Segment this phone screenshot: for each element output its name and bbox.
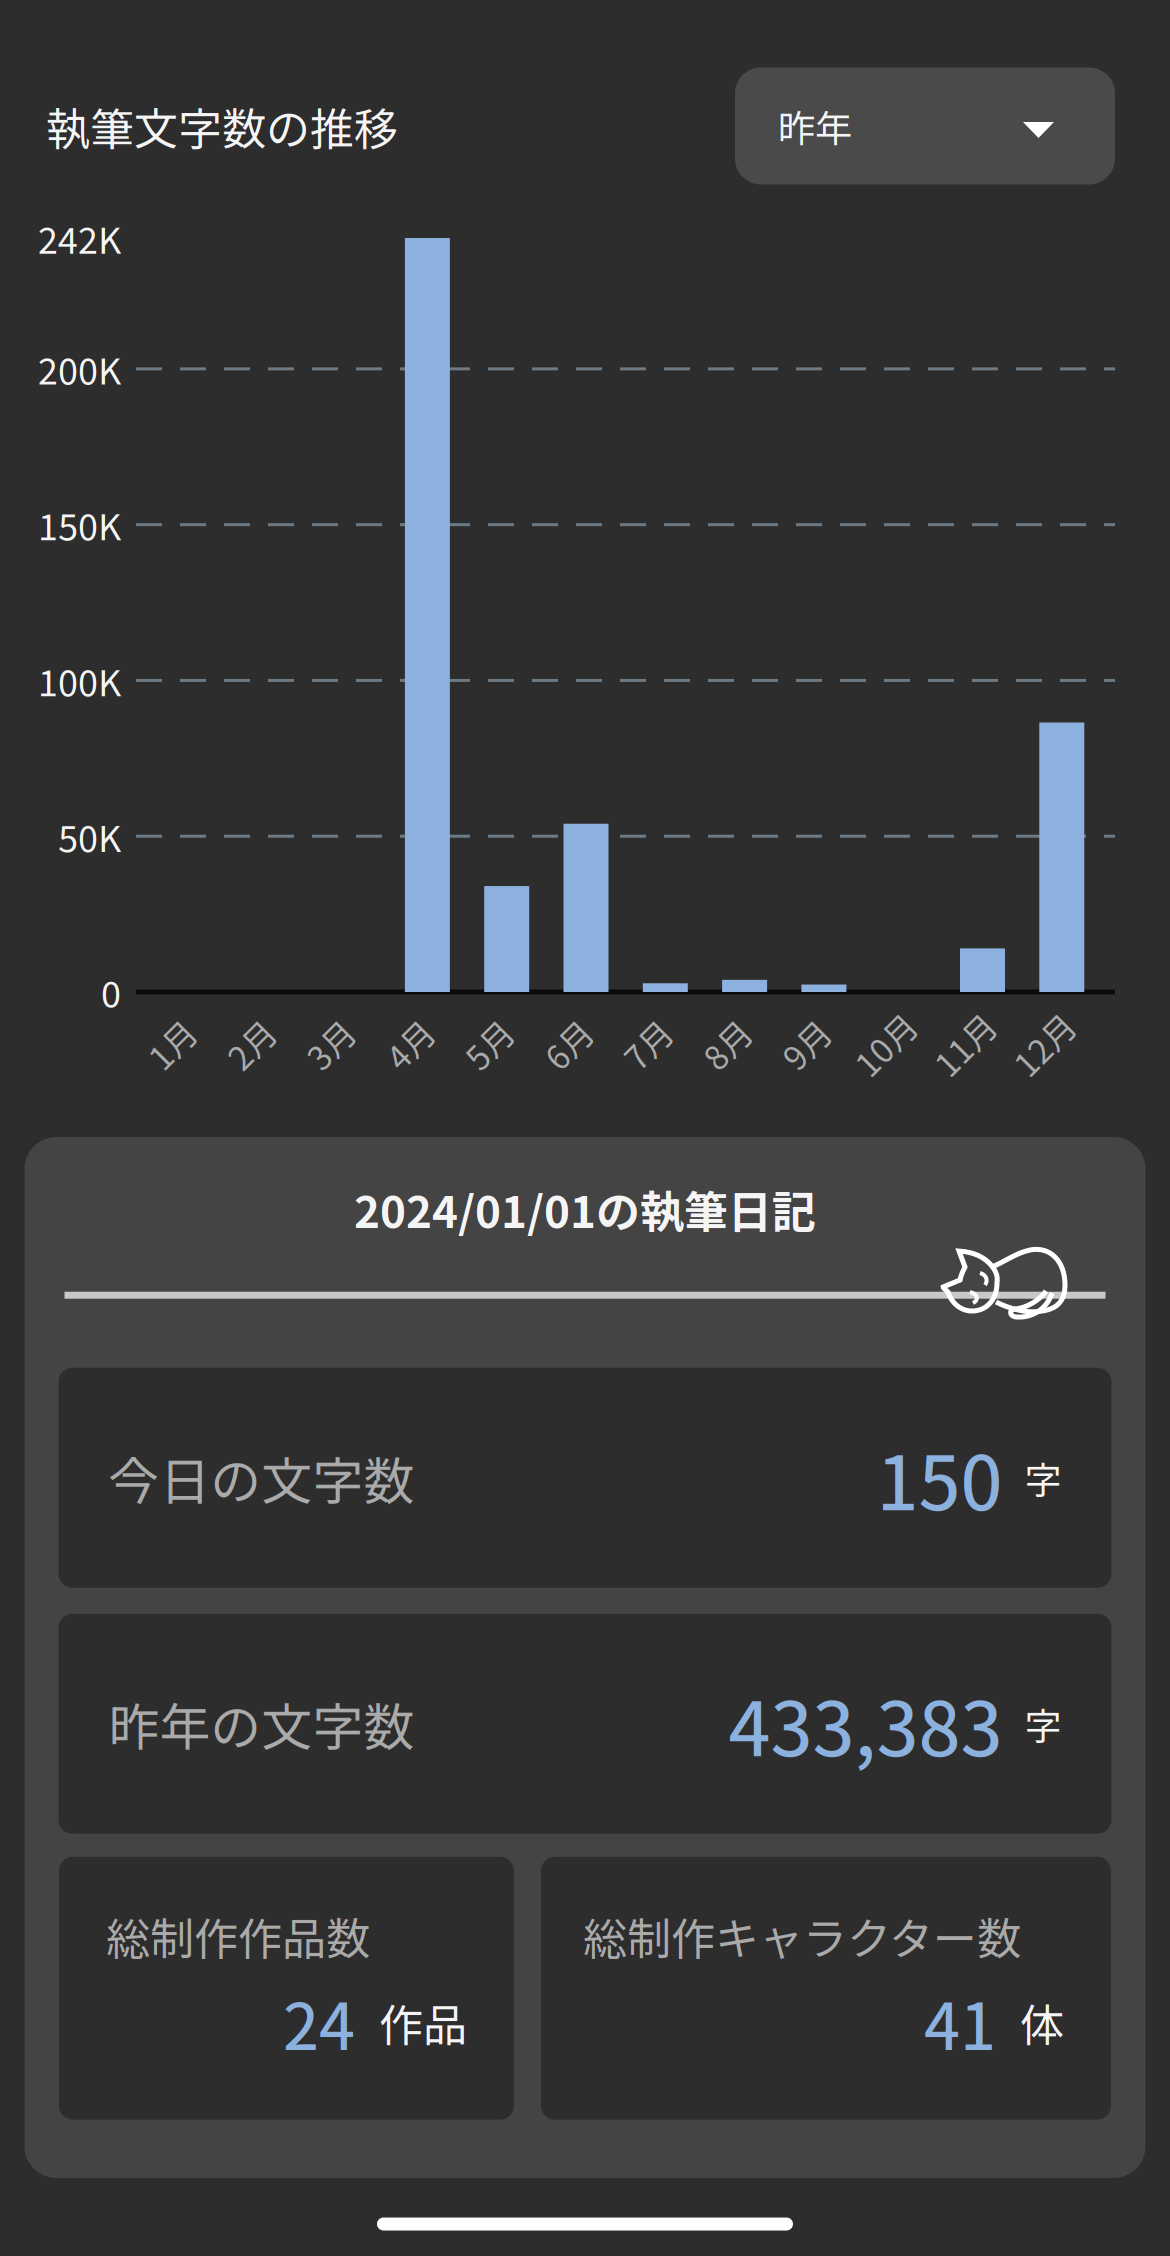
staticText: 150K xyxy=(38,499,121,551)
staticText: 433,383 xyxy=(728,1670,1002,1778)
staticText: 150 xyxy=(876,1424,1002,1532)
staticText: 12月 xyxy=(1008,1020,1079,1068)
staticText: 昨年 xyxy=(778,99,852,153)
staticText: 体 xyxy=(1020,1990,1064,2054)
staticText: 10月 xyxy=(850,1020,921,1068)
button[interactable]: 昨年 xyxy=(735,67,1115,184)
staticText: 8月 xyxy=(701,1020,753,1068)
staticText: 11月 xyxy=(929,1020,1000,1068)
staticText: 50K xyxy=(58,810,121,862)
staticText: 4月 xyxy=(383,1020,435,1068)
staticText: 字 xyxy=(1024,1451,1061,1505)
staticText: 6月 xyxy=(542,1020,594,1068)
staticText: 0 xyxy=(101,966,121,1018)
staticText: 2024/01/01の執筆日記 xyxy=(354,1177,816,1241)
staticText: 100K xyxy=(38,654,121,706)
staticText: 総制作作品数 xyxy=(106,1904,370,1968)
staticText: 字 xyxy=(1024,1697,1061,1751)
staticText: 5月 xyxy=(463,1020,515,1068)
staticText: 総制作キャラクター数 xyxy=(583,1904,1021,1968)
staticText: 昨年の文字数 xyxy=(108,1687,414,1760)
staticText: 執筆文字数の推移 xyxy=(46,94,398,158)
staticText: 作品 xyxy=(379,1990,467,2054)
staticText: 242K xyxy=(38,212,121,264)
staticText: 41 xyxy=(924,1976,996,2068)
staticText: 1月 xyxy=(145,1020,197,1068)
staticText: 24 xyxy=(283,1976,355,2068)
staticText: 9月 xyxy=(780,1020,832,1068)
staticText: 3月 xyxy=(304,1020,356,1068)
staticText: 今日の文字数 xyxy=(108,1441,414,1514)
staticText: 2月 xyxy=(225,1020,277,1068)
staticText: 200K xyxy=(38,343,121,395)
staticText: 7月 xyxy=(621,1020,673,1068)
